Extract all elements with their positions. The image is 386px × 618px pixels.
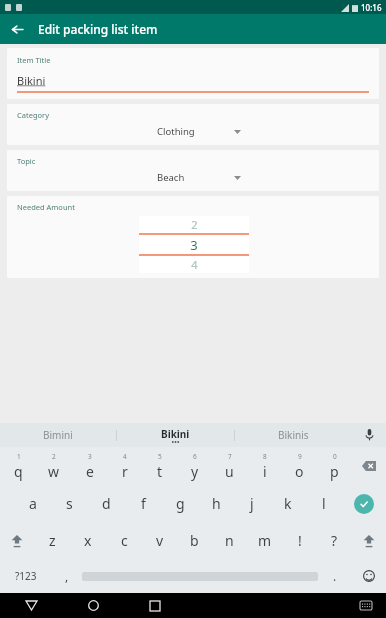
staticText: d [102,494,111,513]
button[interactable]: Home [62,593,124,618]
button[interactable]: 5 [142,447,177,485]
button[interactable]: Backspace [352,447,386,485]
button[interactable]: Back [0,593,62,618]
staticText: , [65,568,69,584]
staticText: 1 [17,452,21,461]
staticText: 5 [158,452,162,461]
staticText: s [66,494,73,513]
button[interactable]: Recents [124,593,186,618]
button[interactable]: x [70,522,106,559]
staticText: . [333,568,337,584]
button[interactable]: Item Title [7,48,379,99]
staticText: k [284,494,292,513]
staticText: p [330,462,339,481]
staticText: 7 [228,452,232,461]
staticText: g [176,494,185,513]
button[interactable]: h [198,485,234,522]
staticText: 6 [193,452,197,461]
button[interactable]: a [14,485,51,522]
staticText: ! [298,531,302,550]
staticText: l [322,494,326,513]
staticText: c [121,531,128,550]
staticText: w [48,462,60,481]
staticText: i [263,462,267,481]
staticText: f [141,494,146,513]
button[interactable]: l [306,485,342,522]
button[interactable]: Bikinis [235,423,352,447]
button[interactable]: s [51,485,88,522]
button[interactable]: 2 [36,447,72,485]
button[interactable]: 8 [247,447,282,485]
staticText: r [122,462,128,481]
button[interactable]: Shift [352,522,386,559]
staticText: Topic [17,156,36,166]
button[interactable]: j [234,485,270,522]
button[interactable]: c [106,522,142,559]
button[interactable]: 9 [282,447,317,485]
staticText: v [156,531,164,550]
button[interactable]: 1 [0,447,36,485]
staticText: y [191,462,199,481]
button[interactable]: b [177,522,212,559]
staticText: ?123 [15,569,37,583]
staticText: u [225,462,234,481]
staticText: Edit packing list item [38,21,158,37]
staticText: b [190,531,199,550]
button[interactable]: ! [282,522,317,559]
button[interactable]: 3 [72,447,107,485]
staticText: t [157,462,163,481]
button[interactable]: 2 [139,216,249,273]
button[interactable]: Shift [0,522,34,559]
staticText: e [86,462,94,481]
button[interactable]: d [88,485,125,522]
staticText: h [212,494,221,513]
button[interactable]: f [125,485,162,522]
staticText: 10:16 [361,2,382,13]
button[interactable]: Emoji [352,559,386,593]
staticText: ? [331,531,338,550]
button[interactable]: 6 [177,447,212,485]
button[interactable]: Bikini [117,423,234,447]
button[interactable]: Space [82,559,318,593]
button[interactable]: z [34,522,70,559]
button[interactable]: Switch keyboard [346,593,386,618]
staticText: Bimini [43,428,73,442]
button[interactable]: Bimini [0,423,116,447]
button[interactable]: v [142,522,177,559]
button[interactable]: n [212,522,247,559]
staticText: Bikini [17,73,46,88]
staticText: 4 [191,257,198,272]
button[interactable]: Category [7,104,379,145]
button[interactable]: , [52,559,82,593]
button[interactable]: Back [6,18,28,40]
button[interactable]: ?123 [0,559,52,593]
button[interactable]: 4 [107,447,142,485]
staticText: 9 [298,452,302,461]
staticText: q [14,462,23,481]
staticText: 4 [123,452,127,461]
button[interactable]: ? [317,522,352,559]
staticText: Bikinis [278,428,309,442]
staticText: Item Title [17,55,51,65]
button[interactable]: 7 [212,447,247,485]
staticText: a [29,494,37,513]
staticText: Bikini [161,427,190,441]
staticText: z [49,531,56,550]
button[interactable]: Voice input [352,423,386,447]
staticText: Beach [157,171,185,184]
staticText: 8 [263,452,267,461]
staticText: 2 [191,217,198,232]
button[interactable]: m [247,522,282,559]
staticText: o [295,462,304,481]
staticText: Category [17,110,49,120]
button[interactable]: Enter [342,485,386,522]
button[interactable]: . [318,559,352,593]
button[interactable]: 0 [317,447,352,485]
button[interactable]: g [162,485,198,522]
staticText: 3 [190,236,198,254]
staticText: 3 [88,452,92,461]
staticText: x [84,531,92,550]
button[interactable]: k [270,485,306,522]
staticText: 0 [333,452,337,461]
button[interactable]: Topic [7,150,379,191]
